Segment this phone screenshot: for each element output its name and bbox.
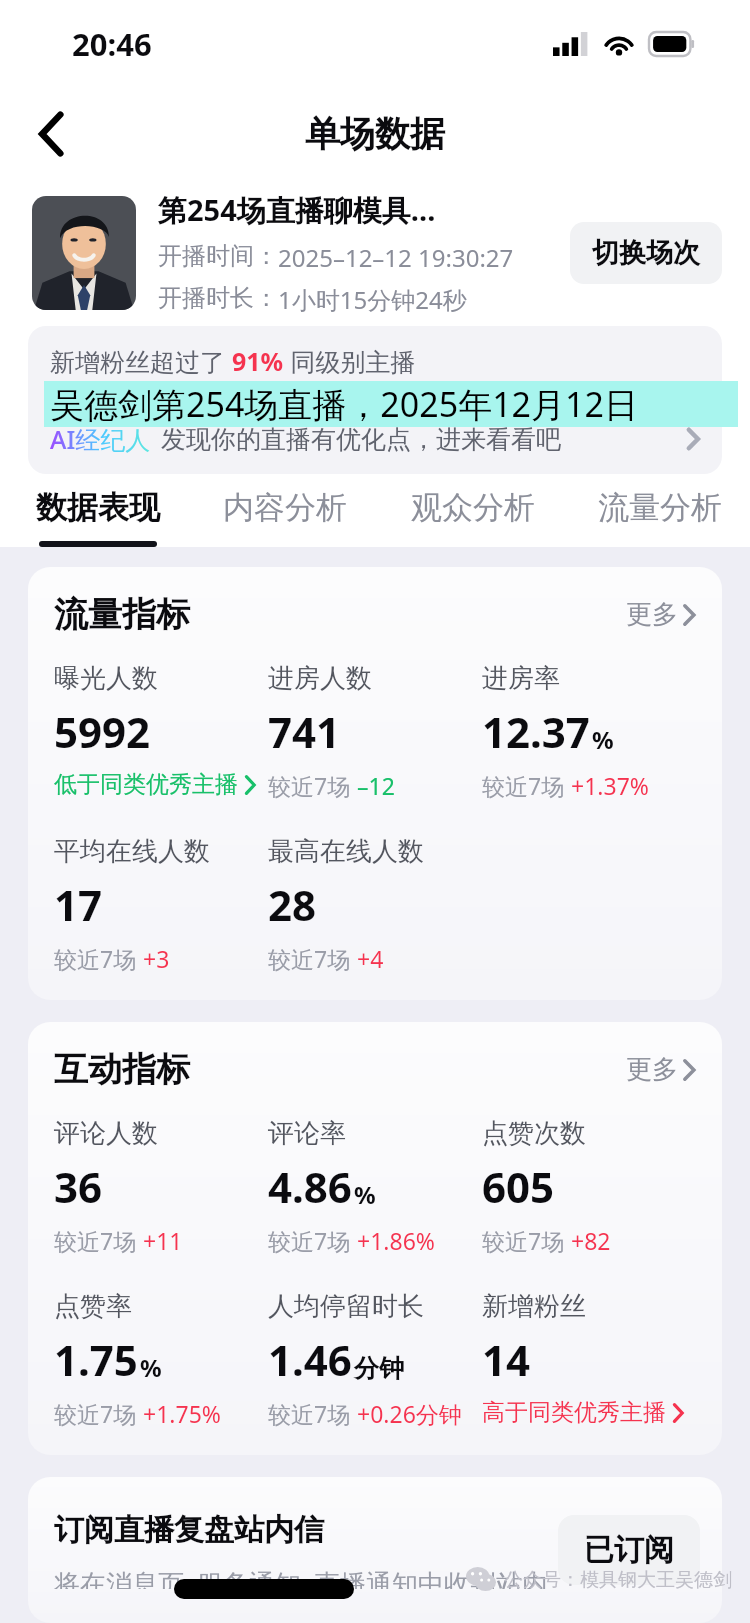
staticText: 605 [482, 1158, 555, 1215]
staticText: 进房人数 [268, 662, 372, 695]
button[interactable]: 观众分析 [403, 488, 543, 547]
staticText: 进房率 [482, 662, 560, 695]
staticText: 切换场次 [592, 236, 700, 270]
staticText: 观众分析 [411, 488, 535, 527]
staticText: 单场数据 [305, 112, 445, 156]
staticText: 同级别主播 [284, 344, 416, 378]
button[interactable]: 内容分析 [215, 488, 355, 547]
button[interactable]: 更多 [626, 598, 696, 631]
button[interactable]: 新增粉丝超过了 [28, 326, 722, 474]
button[interactable]: 评论率 [268, 1117, 435, 1256]
staticText: 点赞次数 [482, 1117, 586, 1150]
staticText: 新增粉丝超过了 [50, 344, 232, 378]
staticText: 吴德剑第254场直播，2025年12月12日 [50, 381, 638, 427]
staticText: –12 [357, 770, 395, 801]
button[interactable]: 进房人数 [268, 662, 395, 801]
staticText: 分钟 [354, 1353, 404, 1384]
staticText: % [140, 1351, 162, 1384]
staticText: 较近7场 [482, 1225, 571, 1256]
staticText: 开播时长： [158, 283, 278, 313]
staticText: 高于同类优秀主播 [482, 1398, 666, 1427]
staticText: 12.37 [482, 703, 590, 760]
button[interactable]: 更多 [626, 1053, 696, 1086]
staticText: 曝光人数 [54, 662, 158, 695]
staticText: 1小时15分钟24秒 [278, 283, 467, 316]
staticText: +1.37% [571, 770, 649, 801]
staticText: 更多 [626, 1053, 678, 1086]
staticText: +1.86% [357, 1225, 435, 1256]
staticText: 较近7场 [54, 1398, 143, 1429]
staticText: 741 [268, 703, 341, 760]
staticText: 流量指标 [54, 593, 626, 636]
staticText: 人均停留时长 [268, 1290, 424, 1323]
staticText: +4 [357, 943, 384, 974]
staticText: 订阅直播复盘站内信 [54, 1511, 324, 1549]
staticText: 36 [54, 1158, 103, 1215]
staticText: 较近7场 [268, 1225, 357, 1256]
staticText: 28 [268, 876, 317, 933]
staticText: 较近7场 [268, 770, 357, 801]
staticText: 数据表现 [36, 488, 160, 527]
staticText: 公众号：模具钢大王吴德剑 [504, 1568, 732, 1592]
staticText: 互动指标 [54, 1048, 626, 1091]
staticText: % [354, 1178, 376, 1211]
staticText: 开播时间： [158, 241, 278, 271]
staticText: AI经纪人 [50, 422, 151, 456]
staticText: 较近7场 [268, 943, 357, 974]
staticText: +11 [143, 1225, 183, 1256]
staticText: 将在消息页–服务通知–直播通知中收到站内信推送 [54, 1565, 558, 1589]
staticText: 较近7场 [268, 1398, 357, 1429]
button[interactable]: 平均在线人数 [54, 835, 210, 974]
staticText: % [592, 723, 614, 756]
staticText: 最高在线人数 [268, 835, 424, 868]
button[interactable]: 点赞次数 [482, 1117, 611, 1256]
staticText: 5992 [54, 703, 151, 760]
staticText: 14 [482, 1331, 531, 1388]
staticText: 1.46 [268, 1331, 352, 1388]
staticText: 已订阅 [584, 1531, 674, 1569]
staticText: 4.86 [268, 1158, 352, 1215]
staticText: +1.75% [143, 1398, 221, 1429]
staticText: 91% [232, 344, 284, 378]
staticText: 较近7场 [54, 943, 143, 974]
button[interactable]: 新增粉丝 [482, 1290, 684, 1427]
button[interactable]: 评论人数 [54, 1117, 183, 1256]
staticText: 20:46 [72, 23, 152, 65]
button[interactable]: 进房率 [482, 662, 649, 801]
staticText: 2025–12–12 19:30:27 [278, 241, 514, 274]
staticText: 17 [54, 876, 103, 933]
button[interactable]: 切换场次 [570, 222, 722, 284]
button[interactable]: 曝光人数 [54, 662, 256, 799]
staticText: 第254场直播聊模具… [158, 190, 436, 230]
staticText: 评论率 [268, 1117, 346, 1150]
button[interactable]: Back [20, 102, 84, 166]
staticText: +82 [571, 1225, 611, 1256]
staticText: +0.26分钟 [357, 1398, 462, 1429]
button[interactable]: 流量分析 [590, 488, 730, 547]
staticText: 1.75 [54, 1331, 138, 1388]
staticText: 流量分析 [598, 488, 722, 527]
staticText: 新增粉丝 [482, 1290, 586, 1323]
button[interactable]: 数据表现 [28, 488, 168, 547]
staticText: 发现你的直播有优化点，进来看看吧 [161, 424, 561, 455]
staticText: 平均在线人数 [54, 835, 210, 868]
staticText: +3 [143, 943, 170, 974]
button[interactable]: 点赞率 [54, 1290, 221, 1429]
staticText: 低于同类优秀主播 [54, 770, 238, 799]
button[interactable]: 人均停留时长 [268, 1290, 462, 1429]
button[interactable]: 最高在线人数 [268, 835, 424, 974]
staticText: 点赞率 [54, 1290, 132, 1323]
staticText: 较近7场 [54, 1225, 143, 1256]
staticText: 评论人数 [54, 1117, 158, 1150]
staticText: 较近7场 [482, 770, 571, 801]
button[interactable]: 已订阅 [558, 1515, 700, 1585]
staticText: 更多 [626, 598, 678, 631]
staticText: 内容分析 [223, 488, 347, 527]
